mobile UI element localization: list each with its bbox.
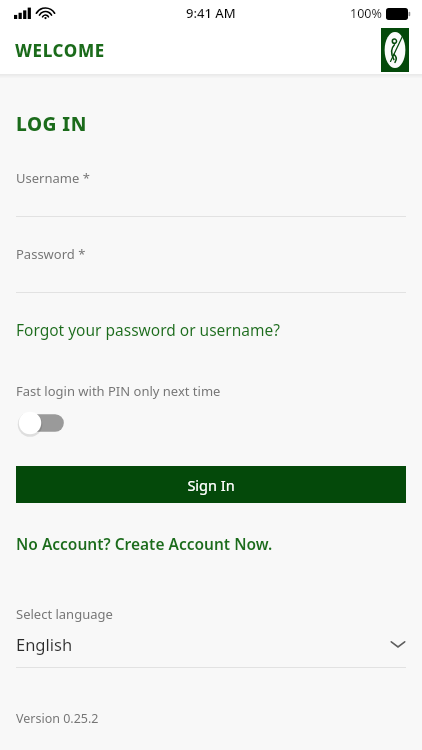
staticText: Username * [16,169,90,187]
staticText: Forgot your password or username? [16,319,280,340]
staticText: WELCOME [15,39,105,62]
button[interactable]: Forgot your password or username? [16,317,406,342]
button[interactable]: Select language [16,605,406,668]
staticText: Select language [16,605,113,623]
button[interactable]: No Account? Create Account Now. [16,531,406,556]
staticText: Fast login with PIN only next time [16,382,221,400]
staticText: Sign In [187,475,235,495]
staticText: English [16,633,73,655]
staticText: 100% [350,5,382,22]
button[interactable]: Username * [16,169,406,217]
staticText: Version 0.25.2 [16,710,99,727]
button[interactable]: Password * [16,245,406,293]
staticText: Password * [16,245,86,263]
staticText: LOG IN [16,111,87,137]
button[interactable]: App logo [381,28,409,72]
staticText: 9:41 AM [186,4,236,22]
button[interactable]: Sign In [16,466,406,503]
staticText: No Account? Create Account Now. [16,533,273,554]
button[interactable]: Fast login with PIN toggle [16,409,68,437]
